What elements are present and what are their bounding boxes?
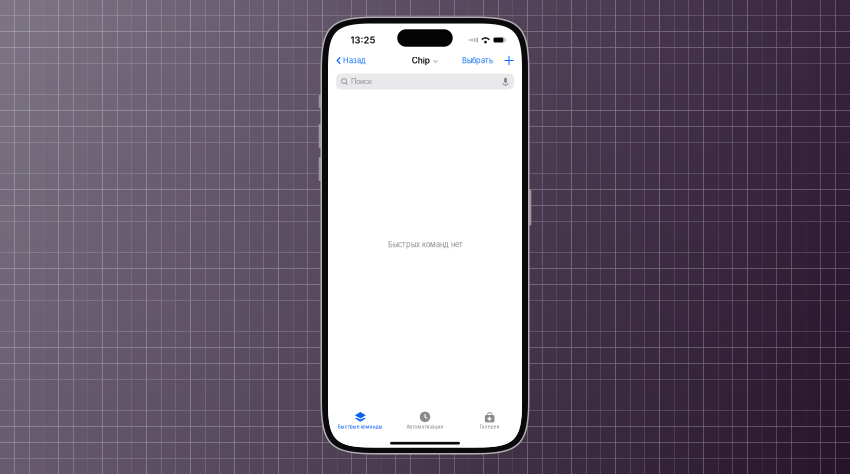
- button[interactable]: Назад: [328, 53, 366, 68]
- button[interactable]: Выбрать: [462, 53, 502, 68]
- staticText: 13:25: [350, 34, 375, 46]
- button[interactable]: Галерея: [457, 411, 522, 430]
- staticText: Быстрых команд нет: [388, 240, 462, 249]
- staticText: Chip: [412, 55, 430, 65]
- button[interactable]: Быстрые команды: [328, 411, 393, 430]
- button[interactable]: Поиск: [336, 73, 514, 89]
- staticText: Автоматизация: [406, 424, 443, 430]
- staticText: Быстрые команды: [338, 424, 383, 430]
- button[interactable]: Добавить быструю команду: [502, 53, 516, 67]
- button[interactable]: Chip: [412, 55, 438, 65]
- staticText: Галерея: [480, 424, 500, 430]
- staticText: Назад: [343, 56, 366, 65]
- staticText: Выбрать: [462, 56, 493, 65]
- button[interactable]: Автоматизация: [393, 411, 457, 430]
- staticText: Поиск: [351, 77, 372, 86]
